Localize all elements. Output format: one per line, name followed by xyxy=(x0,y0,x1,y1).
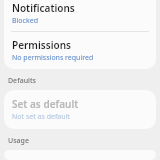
staticText: Defaults xyxy=(8,76,36,86)
staticText: Blocked xyxy=(12,16,38,26)
staticText: Not set as default xyxy=(12,112,70,122)
staticText: Set as default xyxy=(12,97,79,111)
button[interactable]: Notifications xyxy=(4,0,156,31)
staticText: No permissions required xyxy=(12,53,94,63)
button[interactable]: Set as default xyxy=(4,90,156,129)
staticText: Usage xyxy=(8,136,29,146)
staticText: Notifications xyxy=(12,1,75,15)
staticText: Permissions xyxy=(12,38,71,52)
button[interactable]: Permissions xyxy=(4,32,156,69)
